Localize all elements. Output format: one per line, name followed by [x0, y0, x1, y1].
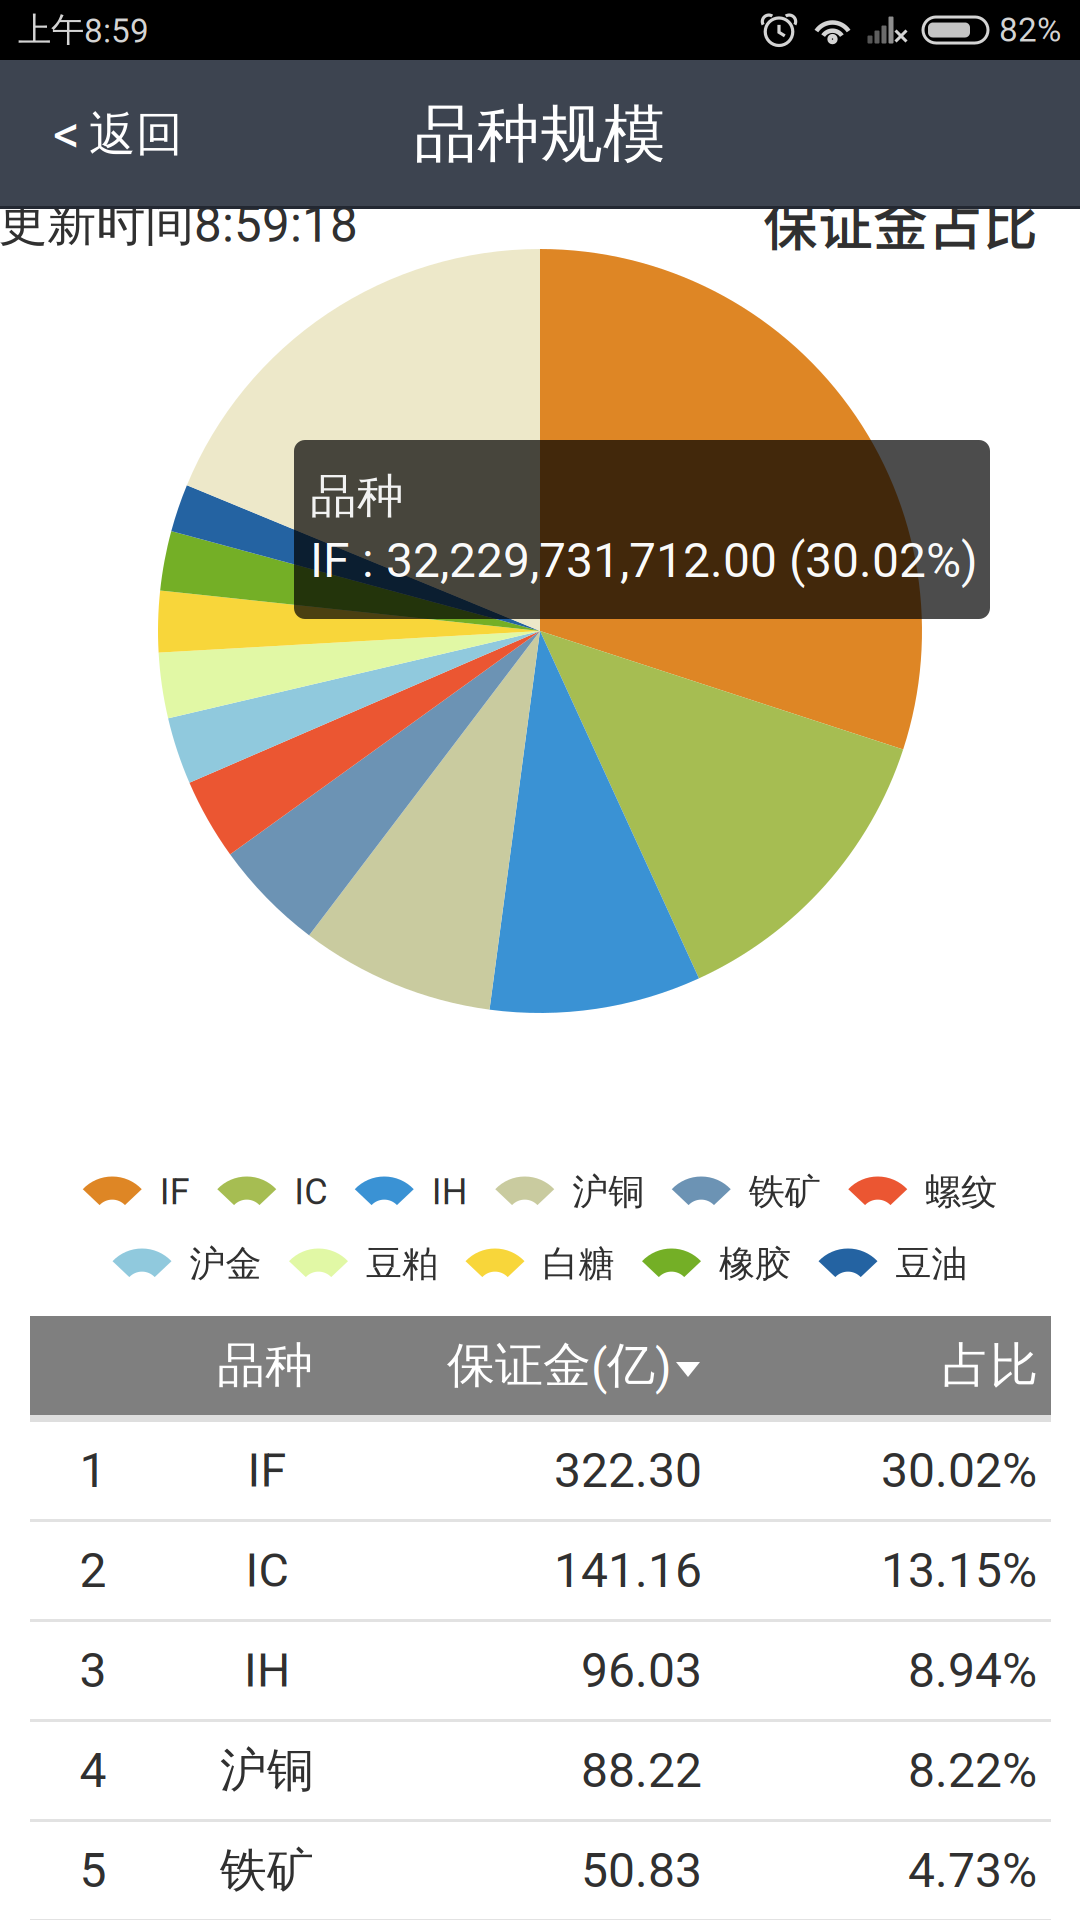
staticText: IF [160, 1171, 190, 1213]
staticText: 螺纹 [925, 1169, 997, 1215]
staticText: IH [432, 1171, 468, 1213]
staticText: 50.83 [581, 1842, 702, 1899]
staticText: 13.15% [881, 1542, 1037, 1599]
staticText: 铁矿 [220, 1841, 314, 1900]
staticText: 返回 [89, 105, 183, 164]
staticText: 沪铜 [572, 1169, 644, 1215]
staticText: 8.94% [908, 1642, 1037, 1699]
staticText: 8.22% [908, 1742, 1037, 1799]
staticText: IC [245, 1543, 288, 1598]
staticText: 铁矿 [749, 1169, 821, 1215]
staticText: 上午8:59 [18, 9, 149, 51]
staticText: 保证金(亿) [447, 1335, 672, 1396]
button[interactable]: < [0, 60, 223, 209]
staticText: 2 [79, 1542, 106, 1599]
staticText: 更新时间8:59:18 [0, 192, 358, 254]
staticText: 141.16 [554, 1542, 702, 1599]
staticText: 白糖 [542, 1241, 614, 1287]
staticText: 1 [79, 1442, 106, 1499]
staticText: 322.30 [554, 1442, 702, 1499]
staticText: 3 [79, 1642, 106, 1699]
staticText: 5 [79, 1842, 106, 1899]
staticText: 品种规模 [414, 95, 666, 174]
staticText: 30.02% [881, 1442, 1037, 1499]
staticText: 豆粕 [366, 1241, 438, 1287]
staticText: 占比 [942, 1335, 1038, 1396]
staticText: 品种 [310, 467, 404, 526]
staticText: IC [294, 1171, 327, 1213]
staticText: IF [247, 1443, 286, 1498]
staticText: 保证金占比 [763, 182, 1038, 261]
staticText: 96.03 [581, 1642, 702, 1699]
staticText: 88.22 [581, 1742, 702, 1799]
staticText: 4 [79, 1742, 106, 1799]
staticText: < [53, 103, 80, 166]
staticText: 豆油 [895, 1241, 967, 1287]
staticText: IF : 32,229,731,712.00 (30.02%) [310, 532, 978, 589]
staticText: 82% [999, 10, 1061, 50]
staticText: 橡胶 [719, 1241, 791, 1287]
staticText: IH [244, 1643, 290, 1698]
staticText: 4.73% [908, 1842, 1037, 1899]
staticText: 沪铜 [220, 1741, 314, 1800]
staticText: 品种 [217, 1335, 313, 1396]
staticText: 沪金 [189, 1241, 261, 1287]
